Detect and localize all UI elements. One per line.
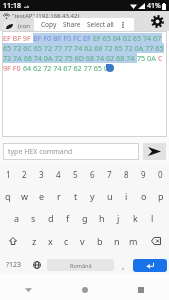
staticText: (con xyxy=(18,22,31,30)
button[interactable]: f xyxy=(59,207,76,229)
staticText: 7 xyxy=(107,169,112,180)
staticText: u xyxy=(107,190,113,202)
button[interactable]: h xyxy=(93,207,110,229)
button[interactable]: q xyxy=(0,185,16,207)
button[interactable]: k xyxy=(127,207,144,229)
button[interactable]: o xyxy=(135,185,152,207)
button[interactable]: Copy xyxy=(38,18,60,31)
staticText: EF BF 9F xyxy=(3,33,33,43)
staticText: c xyxy=(64,235,69,247)
button[interactable]: x xyxy=(42,230,58,252)
staticText: w xyxy=(21,190,29,202)
staticText: 41% xyxy=(147,1,161,11)
button[interactable]: Recents xyxy=(113,276,169,300)
button[interactable]: m xyxy=(125,230,142,252)
button[interactable]: More options xyxy=(117,18,128,31)
button[interactable]: t xyxy=(67,185,84,207)
button[interactable]: w xyxy=(16,185,33,207)
button[interactable]: 7 xyxy=(101,163,118,185)
staticText: p xyxy=(158,190,164,202)
button[interactable]: Română xyxy=(47,259,114,271)
staticText: Share xyxy=(63,20,81,29)
staticText: d xyxy=(48,212,54,224)
button[interactable]: Share xyxy=(60,18,84,31)
button[interactable]: Shift xyxy=(0,230,26,252)
button[interactable]: Enter xyxy=(133,259,167,272)
button[interactable]: i xyxy=(118,185,135,207)
staticText: 11:18 xyxy=(3,1,21,11)
button[interactable]: 6 xyxy=(84,163,101,185)
staticText: n xyxy=(114,235,120,247)
button[interactable]: n xyxy=(108,230,125,252)
staticText: o xyxy=(141,190,147,202)
button[interactable]: 1 xyxy=(0,163,16,185)
staticText: h xyxy=(99,212,105,224)
button[interactable]: ?123 xyxy=(0,254,28,276)
button[interactable]: j xyxy=(110,207,127,229)
button[interactable]: 2 xyxy=(16,163,33,185)
button[interactable]: e xyxy=(33,185,50,207)
button[interactable]: c xyxy=(58,230,74,252)
button[interactable]: Change language xyxy=(28,254,46,276)
button[interactable]: l xyxy=(144,207,161,229)
staticText: s xyxy=(31,212,36,224)
staticText: 0 xyxy=(158,169,163,180)
button[interactable]: Send xyxy=(143,143,166,160)
staticText: i xyxy=(125,190,128,202)
button[interactable]: 9 xyxy=(135,163,152,185)
staticText: g xyxy=(82,212,88,224)
staticText: 4 xyxy=(56,169,61,180)
button[interactable]: type HEX command xyxy=(8,143,139,160)
staticText: "testAP" (192.168.43.42) xyxy=(12,12,80,20)
button[interactable]: 3 xyxy=(33,163,50,185)
button[interactable]: r xyxy=(50,185,67,207)
staticText: 9F F0 xyxy=(3,63,23,73)
staticText: m xyxy=(129,235,138,247)
staticText: BF F0 BF F0 FC EF xyxy=(33,33,93,43)
staticText: EF 65 64 62 65 74 67 xyxy=(93,33,162,43)
button[interactable]: u xyxy=(101,185,118,207)
staticText: b xyxy=(97,235,103,247)
staticText: 65 72 6C 65 72 77 77 74 62 68 72 65 72 0… xyxy=(3,43,164,53)
button[interactable]: d xyxy=(42,207,59,229)
staticText: 2 xyxy=(22,169,27,180)
button[interactable]: Home xyxy=(57,276,113,300)
button[interactable]: v xyxy=(74,230,91,252)
staticText: , xyxy=(122,260,125,271)
staticText: 8 xyxy=(124,169,129,180)
staticText: q xyxy=(5,190,11,202)
button[interactable]: 0 xyxy=(152,163,169,185)
staticText: e xyxy=(39,190,45,202)
staticText: l xyxy=(151,212,154,224)
staticText: 9 xyxy=(141,169,146,180)
staticText: t xyxy=(74,190,78,202)
button[interactable]: z xyxy=(26,230,42,252)
button[interactable]: , xyxy=(115,254,131,276)
button[interactable]: Back xyxy=(0,276,57,300)
button[interactable]: s xyxy=(25,207,42,229)
button[interactable]: b xyxy=(91,230,108,252)
button[interactable]: y xyxy=(84,185,101,207)
button[interactable]: p xyxy=(152,185,169,207)
button[interactable]: Settings xyxy=(148,12,166,30)
staticText: Copy xyxy=(41,20,57,29)
staticText: 64 62 72 74 67 62 77 65 xyxy=(23,63,104,73)
staticText: a xyxy=(14,212,20,224)
staticText: y xyxy=(90,190,95,202)
staticText: r xyxy=(57,190,61,202)
button[interactable]: 5 xyxy=(67,163,84,185)
button[interactable]: Select all xyxy=(84,18,117,31)
staticText: 72 7A 68 74 0A 72 75 6D 68 74 62 68 74 xyxy=(3,53,137,63)
button[interactable]: g xyxy=(76,207,93,229)
staticText: CA EF C0 xyxy=(158,53,167,63)
button[interactable]: a xyxy=(8,207,25,229)
button[interactable]: 4 xyxy=(50,163,67,185)
button[interactable]: Connection xyxy=(3,21,16,31)
button[interactable]: 8 xyxy=(118,163,135,185)
staticText: ?123 xyxy=(6,260,22,270)
staticText: 1 xyxy=(6,169,11,180)
staticText: z xyxy=(32,235,37,247)
staticText: f xyxy=(66,212,70,224)
staticText: j xyxy=(117,212,120,224)
button[interactable]: Backspace xyxy=(142,230,169,252)
